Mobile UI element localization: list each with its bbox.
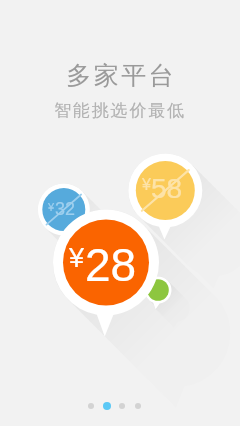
button[interactable]: Page indicator: [103, 402, 111, 410]
staticText: 28: [85, 239, 137, 290]
staticText: ¥: [142, 176, 151, 194]
button[interactable]: Page indicator: [135, 403, 141, 409]
staticText: 32: [55, 199, 76, 219]
staticText: 58: [151, 173, 183, 204]
button[interactable]: Page indicator: [119, 403, 125, 409]
button[interactable]: Page indicator: [88, 403, 94, 409]
staticText: 多家平台: [65, 60, 175, 91]
staticText: ¥: [48, 201, 55, 213]
staticText: 智能挑选价最低: [54, 100, 186, 121]
staticText: ¥: [69, 243, 85, 273]
